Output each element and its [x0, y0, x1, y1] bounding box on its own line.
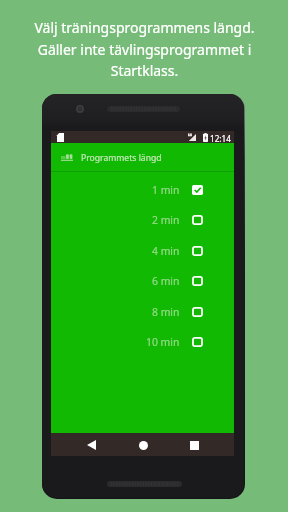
button[interactable]: 10 min [51, 327, 234, 357]
button[interactable]: 2 min [51, 205, 234, 235]
staticText: 1 min [152, 183, 180, 197]
button[interactable]: Home [134, 436, 152, 454]
staticText: 2 min [152, 213, 180, 227]
button[interactable]: 8 min [51, 297, 234, 327]
button[interactable]: 6 min [51, 266, 234, 296]
staticText: 10 min [146, 335, 180, 349]
staticText: 12:14 [210, 133, 231, 144]
staticText: 6 min [152, 274, 180, 288]
staticText: 4 min [152, 244, 180, 258]
staticText: Programmets längd [81, 152, 162, 164]
button[interactable]: 1 min [51, 175, 234, 205]
button[interactable]: 4 min [51, 236, 234, 266]
button[interactable]: Back [82, 436, 100, 454]
staticText: Välj träningsprogrammens längd. Gäller i… [34, 18, 255, 80]
staticText: 8 min [152, 305, 180, 319]
button[interactable]: Recents [185, 436, 203, 454]
